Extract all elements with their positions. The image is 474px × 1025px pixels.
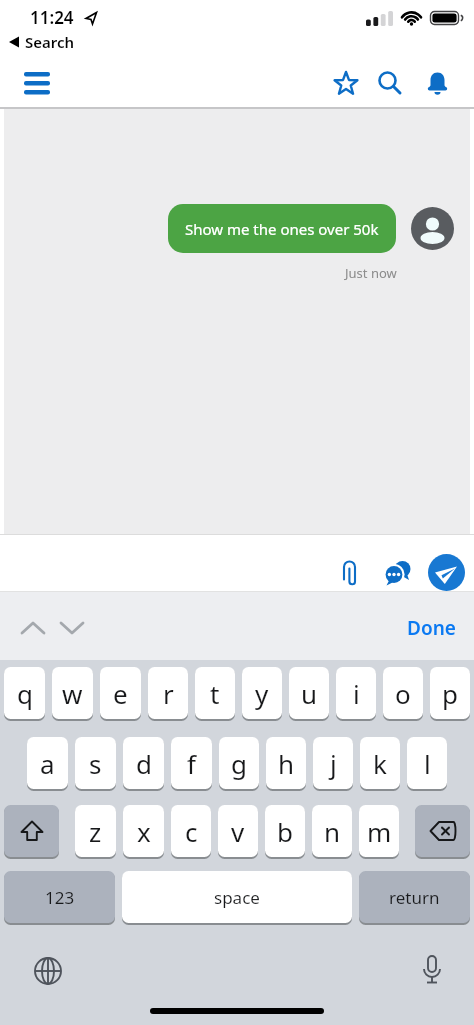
staticText: l (424, 746, 431, 781)
button[interactable] (415, 805, 470, 858)
button[interactable] (419, 65, 455, 101)
button[interactable]: t (195, 667, 235, 720)
button[interactable] (410, 949, 454, 993)
staticText: 123 (45, 886, 75, 909)
button[interactable]: h (266, 737, 306, 790)
staticText: p (442, 676, 458, 711)
staticText: w (62, 676, 83, 711)
staticText: e (113, 676, 128, 711)
button[interactable]: w (52, 667, 93, 720)
staticText: g (231, 746, 247, 781)
button[interactable]: i (336, 667, 376, 720)
button[interactable] (4, 805, 59, 858)
button[interactable]: m (359, 805, 399, 858)
button[interactable]: return (359, 871, 470, 924)
staticText: u (301, 676, 318, 711)
button[interactable]: c (171, 805, 211, 858)
staticText: space (214, 886, 260, 909)
staticText: k (373, 746, 387, 781)
staticText: v (231, 814, 245, 849)
button[interactable]: d (123, 737, 164, 790)
staticText: z (89, 814, 102, 849)
staticText: Done (407, 615, 456, 641)
button[interactable]: Done (407, 615, 474, 641)
staticText: i (353, 676, 360, 711)
button[interactable]: z (75, 805, 116, 858)
staticText: y (255, 676, 269, 711)
staticText: b (277, 814, 293, 849)
button[interactable]: q (4, 667, 45, 720)
button[interactable]: a (27, 737, 68, 790)
button[interactable] (328, 65, 364, 101)
button[interactable]: l (407, 737, 447, 790)
button[interactable]: j (313, 737, 353, 790)
button[interactable] (26, 949, 70, 993)
button[interactable]: Show me the ones over 50k (168, 204, 396, 253)
button[interactable]: k (360, 737, 400, 790)
staticText: x (137, 814, 151, 849)
staticText: return (389, 886, 440, 909)
button[interactable]: n (312, 805, 352, 858)
staticText: o (395, 676, 411, 711)
button[interactable]: f (171, 737, 212, 790)
button[interactable] (428, 554, 465, 591)
button[interactable]: b (265, 805, 305, 858)
staticText: c (185, 814, 198, 849)
staticText: Show me the ones over 50k (185, 219, 379, 239)
button[interactable]: u (289, 667, 329, 720)
button[interactable]: p (430, 667, 470, 720)
staticText: Search (25, 32, 75, 52)
button[interactable] (382, 558, 412, 588)
staticText: h (278, 746, 295, 781)
staticText: 11:24 (30, 6, 74, 29)
staticText: f (187, 746, 196, 781)
staticText: n (324, 814, 341, 849)
button[interactable]: o (383, 667, 423, 720)
staticText: q (17, 676, 33, 711)
staticText: Just now (345, 264, 397, 282)
staticText: a (40, 746, 55, 781)
button[interactable]: v (218, 805, 258, 858)
button[interactable]: g (219, 737, 259, 790)
button[interactable]: x (123, 805, 164, 858)
button[interactable]: 123 (4, 871, 115, 924)
staticText: s (89, 746, 102, 781)
staticText: j (330, 746, 337, 781)
button[interactable] (372, 65, 408, 101)
button[interactable] (18, 65, 58, 105)
staticText: m (367, 814, 392, 849)
button[interactable]: s (75, 737, 116, 790)
button[interactable]: y (242, 667, 282, 720)
staticText: t (210, 676, 220, 711)
button[interactable]: r (148, 667, 188, 720)
button[interactable]: e (100, 667, 141, 720)
button[interactable] (334, 558, 364, 588)
staticText: r (163, 676, 174, 711)
staticText: d (136, 746, 152, 781)
button[interactable]: space (122, 871, 352, 924)
